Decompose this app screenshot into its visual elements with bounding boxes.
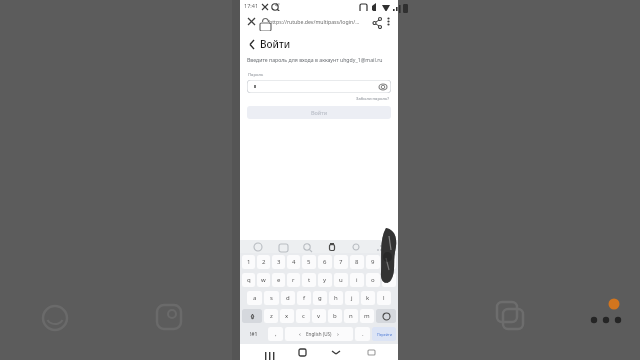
button[interactable]: j [345, 291, 359, 305]
button[interactable]: Show password [378, 82, 387, 91]
staticText: y [323, 276, 327, 284]
staticText: c [302, 312, 305, 320]
button[interactable]: a [247, 291, 262, 305]
staticText: !#1 [250, 331, 258, 338]
staticText: 7 [339, 258, 343, 266]
button[interactable]: y [318, 273, 332, 287]
button[interactable]: !#1 [242, 327, 266, 341]
button[interactable]: l [377, 291, 391, 305]
button[interactable]: b [328, 309, 342, 323]
button[interactable]: g [313, 291, 327, 305]
button[interactable]: 2 [257, 255, 270, 269]
button[interactable]: Search [300, 240, 313, 253]
staticText: n [349, 312, 353, 320]
button[interactable]: 3 [272, 255, 285, 269]
button[interactable]: z [264, 309, 278, 323]
staticText: 8 [355, 258, 359, 266]
button[interactable]: 7 [334, 255, 348, 269]
staticText: 0 [387, 258, 391, 266]
staticText: l [383, 294, 385, 302]
staticText: Войти [260, 37, 291, 51]
button[interactable]: Close [244, 14, 258, 28]
button[interactable]: 6 [318, 255, 332, 269]
button[interactable]: Перейти [372, 327, 396, 341]
button[interactable]: i [350, 273, 364, 287]
button[interactable]: Settings [349, 240, 362, 253]
staticText: Введите пароль для входа в аккаунт uhgdy… [247, 56, 383, 63]
staticText: 4 [292, 258, 296, 266]
staticText: k [366, 294, 370, 302]
staticText: v [317, 312, 321, 320]
button[interactable]: More options [383, 16, 394, 27]
button[interactable]: c [296, 309, 310, 323]
staticText: 3 [277, 258, 281, 266]
button[interactable]: m [360, 309, 374, 323]
button[interactable]: h [329, 291, 343, 305]
button[interactable]: 5 [302, 255, 316, 269]
staticText: z [270, 312, 273, 320]
button[interactable]: Забыли пароль? [356, 96, 390, 102]
staticText: 6 [323, 258, 327, 266]
button[interactable]: Keyboard layout [363, 344, 379, 360]
staticText: Забыли пароль? [356, 96, 390, 102]
button[interactable]: Back [245, 38, 257, 50]
staticText: r [292, 276, 295, 284]
button[interactable]: 1 [242, 255, 255, 269]
button[interactable]: o [366, 273, 380, 287]
button[interactable]: Stickers [251, 240, 264, 253]
button[interactable]: Войти [247, 106, 391, 119]
staticText: 17:41 [244, 2, 259, 9]
button[interactable]: u [334, 273, 348, 287]
button[interactable]: 8 [350, 255, 364, 269]
staticText: › [337, 330, 339, 338]
button[interactable]: Clipboard [325, 240, 338, 253]
staticText: ‹ [299, 330, 301, 338]
button[interactable]: ‹ [285, 327, 353, 341]
button[interactable]: q [242, 273, 255, 287]
staticText: i [356, 276, 358, 284]
button[interactable]: k [361, 291, 375, 305]
button[interactable]: s [264, 291, 279, 305]
button[interactable]: r [287, 273, 300, 287]
button[interactable]: https://rutube.dev/multipass/login/... [269, 18, 368, 25]
button[interactable]: 0 [382, 255, 396, 269]
button[interactable]: p [382, 273, 396, 287]
staticText: g [318, 294, 322, 302]
button[interactable]: v [312, 309, 326, 323]
staticText: Перейти [377, 332, 392, 337]
staticText: e [277, 276, 281, 284]
button[interactable]: Recents [259, 344, 275, 360]
button[interactable]: . [355, 327, 370, 341]
button[interactable]: GIF [276, 240, 289, 253]
staticText: 9 [371, 258, 375, 266]
button[interactable]: Share [371, 15, 383, 27]
button[interactable]: d [281, 291, 295, 305]
button[interactable]: Home [294, 344, 310, 360]
button[interactable]: Backspace [376, 309, 396, 323]
staticText: m [364, 312, 370, 320]
button[interactable]: More [374, 240, 387, 253]
button[interactable]: t [302, 273, 316, 287]
button[interactable]: w [257, 273, 270, 287]
staticText: Пароль [248, 72, 264, 78]
button[interactable]: 9 [366, 255, 380, 269]
button[interactable]: Hide keyboard [328, 344, 344, 360]
button[interactable]: Shift [242, 309, 262, 323]
button[interactable]: 4 [287, 255, 300, 269]
staticText: o [371, 276, 375, 284]
staticText: https://rutube.dev/multipass/login/... [269, 18, 360, 25]
staticText: 4° [275, 2, 281, 9]
button[interactable]: n [344, 309, 358, 323]
button[interactable]: Show password [247, 80, 391, 93]
button[interactable]: x [280, 309, 294, 323]
staticText: j [351, 294, 353, 302]
staticText: a [253, 294, 257, 302]
button[interactable]: f [297, 291, 311, 305]
button[interactable]: e [272, 273, 285, 287]
button[interactable]: , [268, 327, 283, 341]
staticText: f [303, 294, 306, 302]
staticText: x [285, 312, 289, 320]
staticText: English (US) [306, 331, 332, 337]
staticText: t [308, 276, 311, 284]
staticText: u [339, 276, 343, 284]
